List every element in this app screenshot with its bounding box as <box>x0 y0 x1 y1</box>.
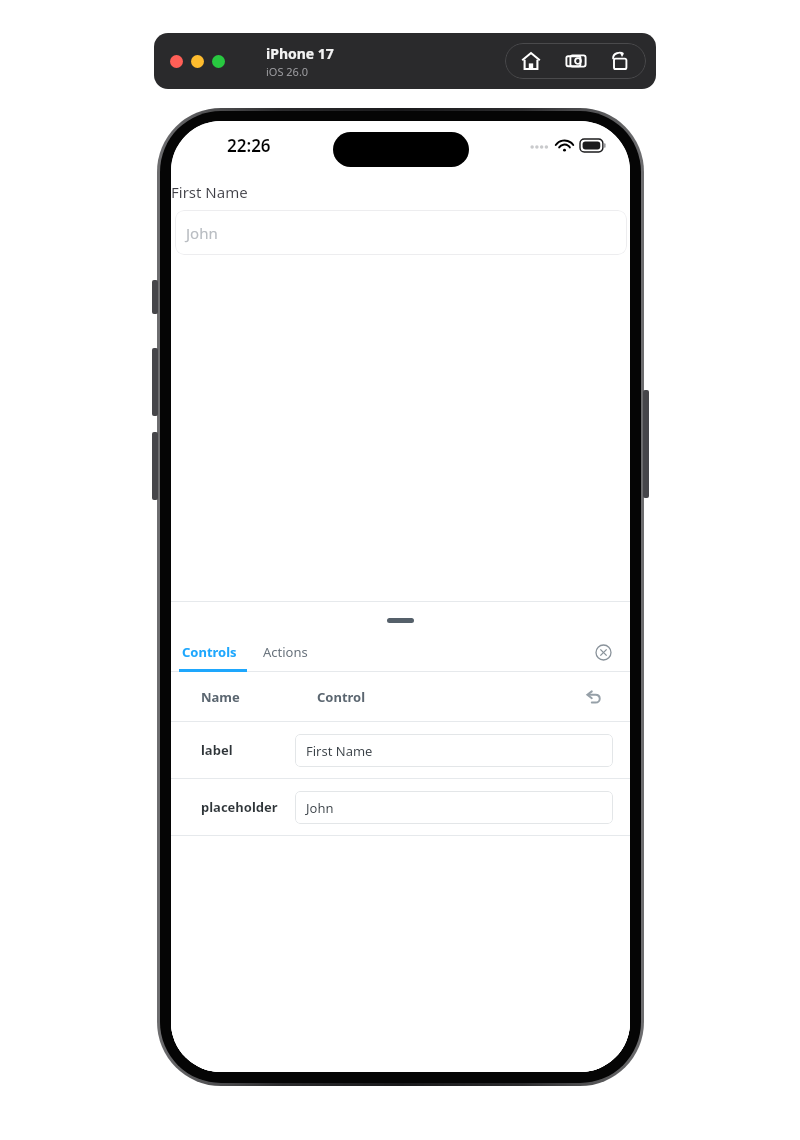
staticText: iPhone 17 <box>266 44 334 63</box>
button[interactable]: Window control <box>170 55 183 68</box>
staticText: 22:26 <box>227 134 271 157</box>
staticText: iOS 26.0 <box>266 64 309 79</box>
button[interactable]: Home <box>513 43 549 79</box>
button[interactable]: Actions <box>247 632 323 672</box>
button[interactable]: John <box>175 210 627 255</box>
button[interactable]: Resize panel <box>171 602 630 632</box>
staticText: label <box>201 741 283 759</box>
staticText: Control <box>317 688 366 706</box>
staticText: Controls <box>182 643 237 661</box>
button[interactable]: Close panel <box>590 639 616 665</box>
button[interactable]: Screenshot <box>558 43 594 79</box>
button[interactable]: label <box>171 722 630 778</box>
button[interactable]: Window control <box>191 55 204 68</box>
button[interactable]: Reset controls <box>580 684 606 710</box>
staticText: First Name <box>171 182 248 202</box>
button[interactable]: Rotate <box>602 43 638 79</box>
button[interactable]: placeholder <box>171 779 630 835</box>
staticText: placeholder <box>201 798 283 816</box>
staticText: Actions <box>263 643 308 661</box>
button[interactable]: Controls <box>171 632 247 672</box>
staticText: First Name <box>306 742 373 760</box>
staticText: John <box>186 223 218 243</box>
staticText: Name <box>201 688 240 706</box>
staticText: John <box>306 799 334 817</box>
button[interactable]: Window control <box>212 55 225 68</box>
